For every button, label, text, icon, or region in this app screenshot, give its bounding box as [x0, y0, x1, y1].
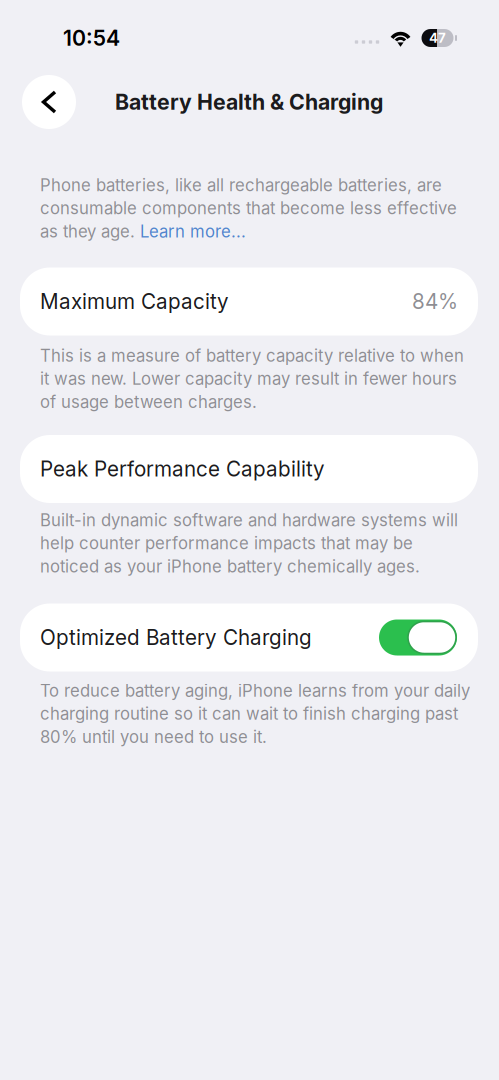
staticText: Learn more...	[140, 221, 246, 241]
staticText: Phone batteries, like all rechargeable b…	[40, 175, 442, 195]
staticText: To reduce battery aging, iPhone learns f…	[40, 680, 470, 701]
staticText: charging routine so it can wait to finis…	[40, 704, 458, 724]
staticText: 47	[429, 30, 446, 46]
button[interactable]: Learn more...	[140, 221, 246, 241]
button[interactable]: Maximum Capacity	[20, 267, 478, 335]
staticText: help counter performance impacts that ma…	[40, 533, 413, 553]
button[interactable]: Peak Performance Capability	[20, 435, 478, 503]
staticText: 10:54	[63, 25, 120, 51]
staticText: it was new. Lower capacity may result in…	[40, 369, 457, 389]
staticText: Peak Performance Capability	[40, 456, 325, 481]
staticText: noticed as your iPhone battery chemicall…	[40, 556, 420, 576]
staticText: Battery Health & Charging	[115, 89, 383, 115]
staticText: 84%	[412, 289, 458, 314]
staticText: Optimized Battery Charging	[40, 625, 312, 650]
staticText: This is a measure of battery capacity re…	[40, 345, 464, 366]
staticText: of usage between charges.	[40, 392, 257, 412]
staticText: as they age.	[40, 221, 140, 241]
staticText: 80% until you need to use it.	[40, 727, 267, 747]
staticText: Built-in dynamic software and hardware s…	[40, 510, 458, 530]
button[interactable]: Back	[22, 75, 76, 129]
button[interactable]: Optimized Battery Charging	[379, 619, 457, 655]
staticText: consumable components that become less e…	[40, 198, 457, 218]
staticText: Maximum Capacity	[40, 289, 229, 314]
